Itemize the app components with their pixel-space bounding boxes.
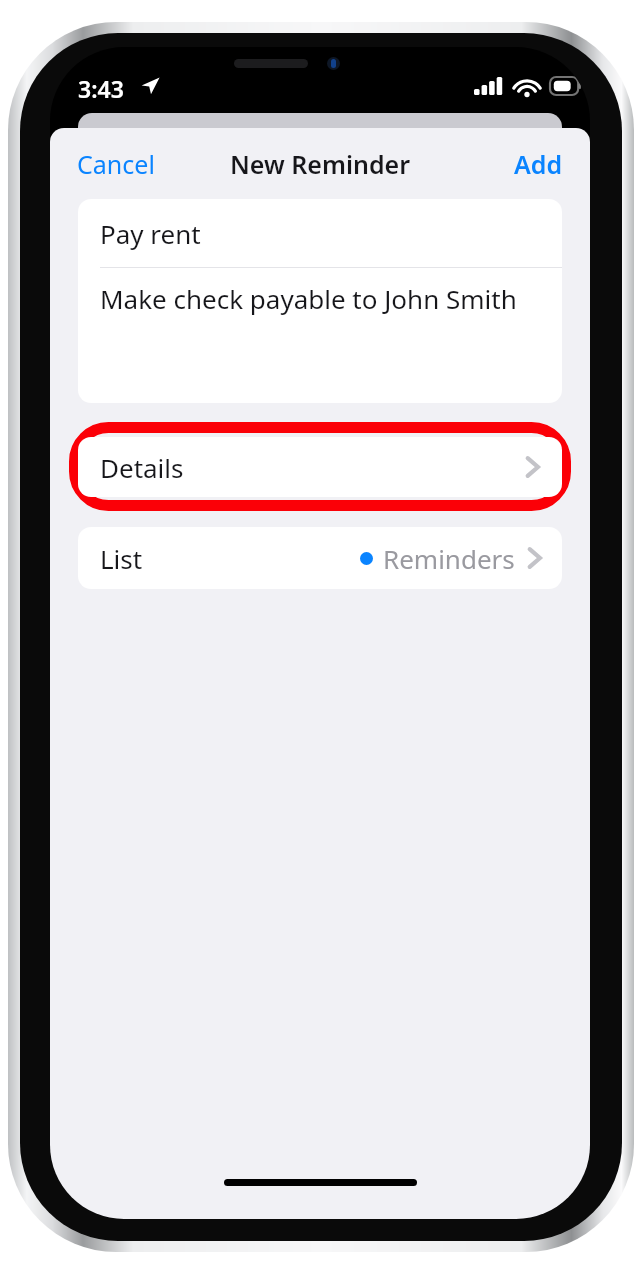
staticText: New Reminder [230, 147, 411, 181]
staticText: Details [100, 450, 184, 485]
button[interactable]: Add [487, 135, 590, 193]
button[interactable]: Cancel [50, 135, 182, 193]
button[interactable]: Details [78, 437, 562, 497]
other: Open [525, 454, 540, 480]
staticText: Add [514, 147, 563, 181]
staticText: Reminders [383, 541, 515, 576]
button[interactable]: Pay rent [78, 199, 562, 267]
staticText: Make check payable to John Smith [100, 281, 517, 316]
staticText: Cancel [77, 147, 155, 181]
button[interactable]: List [78, 527, 562, 589]
other: Open [527, 545, 542, 571]
button[interactable]: Make check payable to John Smith [78, 268, 562, 328]
staticText: List [100, 541, 143, 576]
staticText: 3:43 [78, 73, 124, 104]
staticText: Pay rent [100, 216, 201, 251]
